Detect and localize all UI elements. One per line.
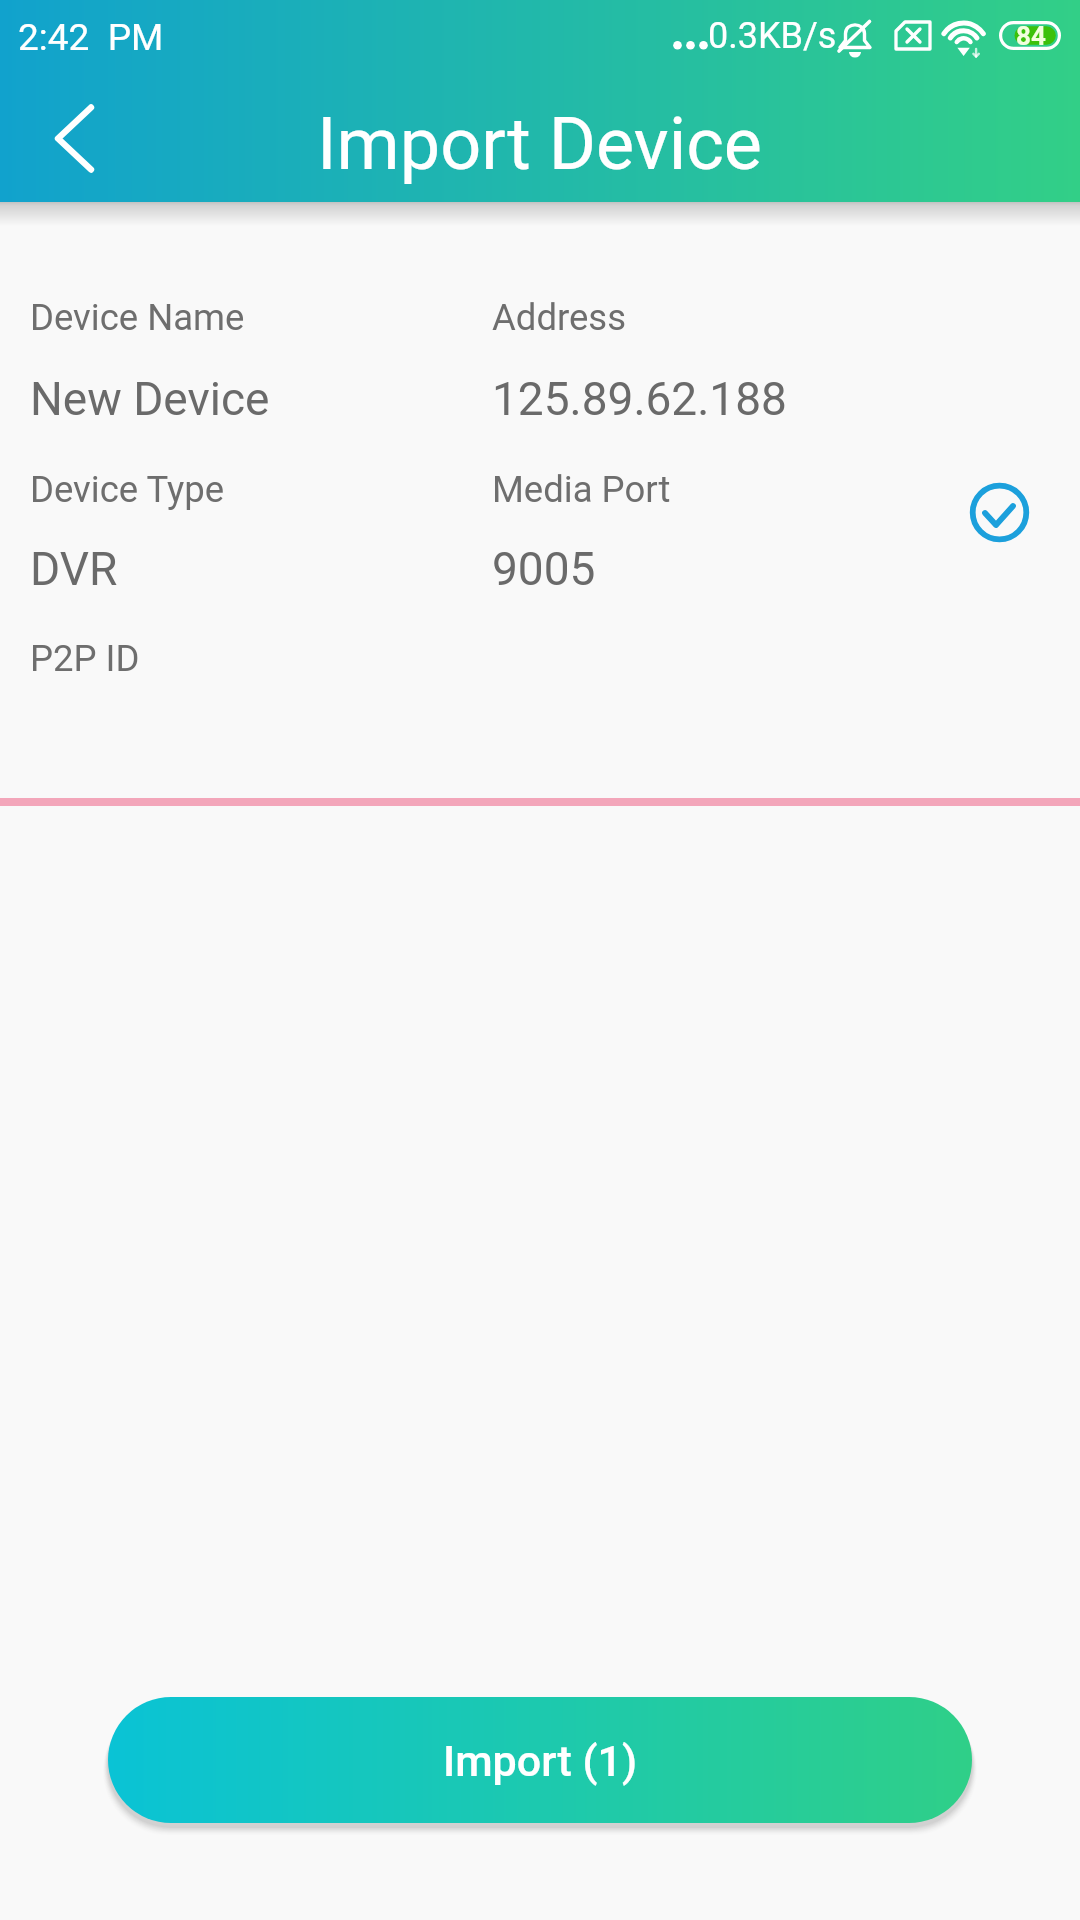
staticText: Address xyxy=(492,296,627,339)
staticText: 9005 xyxy=(492,542,596,596)
staticText: Import Device xyxy=(317,102,763,186)
staticText: Device Name xyxy=(30,296,245,339)
staticText: 125.89.62.188 xyxy=(492,372,787,426)
staticText: 2:42 PM xyxy=(18,16,164,59)
staticText: New Device xyxy=(30,372,270,426)
staticText: 84 xyxy=(1016,21,1046,50)
staticText: 0.3KB/s xyxy=(708,15,837,57)
button[interactable]: Back xyxy=(28,101,114,187)
button[interactable]: Selected xyxy=(966,479,1033,546)
staticText: Import (1) xyxy=(443,1736,638,1786)
staticText: DVR xyxy=(30,542,118,596)
staticText: Media Port xyxy=(492,468,671,511)
staticText: Device Type xyxy=(30,468,225,511)
staticText: P2P ID xyxy=(30,637,140,680)
button[interactable]: Import (1) xyxy=(108,1697,972,1823)
